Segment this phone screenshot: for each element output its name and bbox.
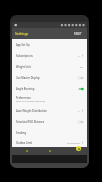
staticText: 70 seconds [67,141,80,144]
button[interactable]: Auto Weight Distribution [12,105,87,116]
button[interactable]: Sending [12,127,87,138]
staticText: Simulate RSSI Distance [16,120,45,124]
button[interactable]: Preferences [12,94,87,105]
button[interactable]: Angle Running [12,83,87,94]
button[interactable]: App Set Up [12,39,87,50]
staticText: Use Master Display [16,76,40,80]
button[interactable]: Use Master Display [12,72,87,83]
button[interactable]: Subscriptions [12,50,87,61]
staticText: Settings [15,31,74,36]
staticText: 0 [78,54,80,57]
button[interactable]: Simulate RSSI Distance [12,116,87,127]
staticText: Weight Unit [16,65,31,69]
staticText: Angle Running [16,87,35,91]
staticText: 2 [78,109,80,112]
button[interactable]: Workouts [24,148,29,153]
button[interactable]: Devices [47,148,52,153]
staticText: Preferences [16,96,31,100]
staticText: kg [80,65,83,68]
staticText: Sending [16,131,27,135]
staticText: App Set Up [16,43,30,47]
staticText: Auto Weight Distribution [16,109,47,113]
button[interactable]: Weight Unit [12,61,87,72]
staticText: Enter SET number (optional) [16,100,45,103]
staticText: Outbox Limit [16,141,33,145]
staticText: RESET [74,32,82,36]
button[interactable]: Outbox Limit [12,138,87,147]
button[interactable]: Add [76,146,81,151]
button[interactable]: RESET [74,32,82,36]
staticText: Subscriptions [16,54,33,58]
